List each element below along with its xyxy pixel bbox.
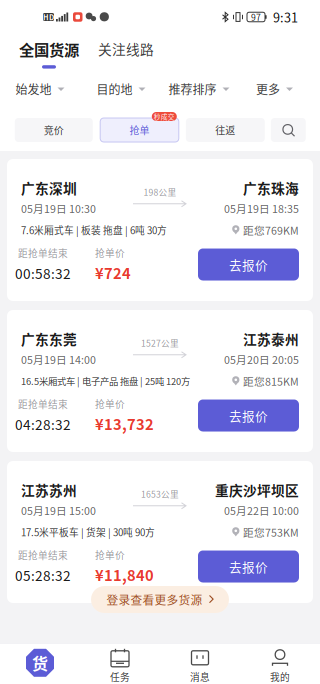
- staticText: 目的地: [96, 80, 132, 98]
- staticText: 05月19日 14:00: [21, 352, 96, 367]
- button[interactable]: 关注线路: [98, 36, 154, 78]
- staticText: 9:31: [273, 8, 298, 26]
- button[interactable]: 目的地: [97, 78, 145, 100]
- staticText: 江苏泰州: [243, 329, 299, 349]
- button[interactable]: 更多: [256, 78, 293, 100]
- button[interactable]: 消息: [160, 644, 240, 684]
- button[interactable]: 搜索: [271, 112, 306, 142]
- staticText: 198公里: [143, 186, 176, 198]
- staticText: 7.6米厢式车 | 板装 拖盘 | 6吨 30方: [21, 223, 167, 237]
- staticText: 推荐排序: [168, 80, 216, 98]
- staticText: 05月19日 18:35: [224, 201, 299, 216]
- staticText: 距抢单结束: [18, 397, 68, 411]
- staticText: 1527公里: [141, 337, 179, 349]
- staticText: 16.5米厢式车 | 电子产品 拖盘 | 25吨 120方: [21, 374, 190, 388]
- staticText: 重庆沙坪坝区: [215, 480, 299, 500]
- button[interactable]: 登录查看更多货源: [91, 586, 229, 613]
- staticText: ¥724: [95, 262, 131, 283]
- button[interactable]: 我的: [240, 644, 320, 684]
- staticText: 江苏苏州: [21, 480, 77, 500]
- staticText: 97: [251, 11, 261, 23]
- staticText: 17.5米平板车 | 货架 | 30吨 90方: [21, 525, 155, 539]
- staticText: 去报价: [229, 255, 268, 274]
- button[interactable]: 江苏苏州: [7, 461, 313, 603]
- staticText: 05月20日 20:05: [224, 352, 299, 367]
- button[interactable]: 任务: [80, 644, 160, 684]
- staticText: 广东深圳: [21, 178, 77, 198]
- staticText: 抢单: [129, 123, 149, 137]
- staticText: 全国货源: [19, 38, 79, 60]
- button[interactable]: 始发地: [16, 78, 64, 100]
- staticText: 去报价: [229, 557, 268, 576]
- staticText: 更多: [256, 80, 280, 98]
- staticText: 消息: [190, 670, 210, 684]
- staticText: 广东东莞: [21, 329, 77, 349]
- staticText: 往返: [215, 123, 235, 137]
- staticText: 抢单价: [95, 397, 125, 411]
- staticText: 抢单价: [95, 548, 125, 562]
- button[interactable]: 往返: [186, 112, 265, 142]
- staticText: 登录查看更多货源: [106, 591, 202, 608]
- staticText: 1653公里: [141, 488, 179, 500]
- staticText: 我的: [270, 670, 290, 684]
- button[interactable]: 广东东莞: [7, 310, 313, 452]
- staticText: 距抢单结束: [18, 548, 68, 562]
- staticText: 关注线路: [98, 39, 154, 59]
- staticText: 货: [32, 651, 48, 674]
- button[interactable]: 货源: [0, 644, 80, 684]
- staticText: 04:28:32: [15, 414, 71, 434]
- staticText: 秒成交: [154, 112, 175, 121]
- staticText: 05:28:32: [15, 565, 71, 585]
- staticText: 去报价: [229, 406, 268, 425]
- staticText: 任务: [110, 670, 130, 684]
- staticText: 距您815KM: [243, 373, 299, 389]
- staticText: 05月19日 10:30: [21, 201, 96, 216]
- button[interactable]: 竞价: [15, 112, 93, 142]
- staticText: 05月22日 10:00: [224, 503, 299, 518]
- staticText: 距您753KM: [243, 524, 299, 540]
- button[interactable]: 抢单: [100, 112, 179, 142]
- button[interactable]: 推荐排序: [170, 78, 228, 100]
- staticText: 竞价: [44, 123, 64, 137]
- staticText: 距抢单结束: [18, 246, 68, 260]
- button[interactable]: 全国货源: [17, 36, 81, 78]
- staticText: 始发地: [15, 80, 51, 98]
- staticText: HD: [43, 12, 54, 22]
- staticText: 05月19日 15:00: [21, 503, 96, 518]
- staticText: 抢单价: [95, 246, 125, 260]
- staticText: ¥11,840: [95, 564, 154, 585]
- staticText: 距您769KM: [243, 222, 299, 238]
- staticText: ¥13,732: [95, 413, 154, 434]
- button[interactable]: 广东深圳: [7, 159, 313, 301]
- staticText: 00:58:32: [15, 263, 71, 283]
- staticText: 广东珠海: [243, 178, 299, 198]
